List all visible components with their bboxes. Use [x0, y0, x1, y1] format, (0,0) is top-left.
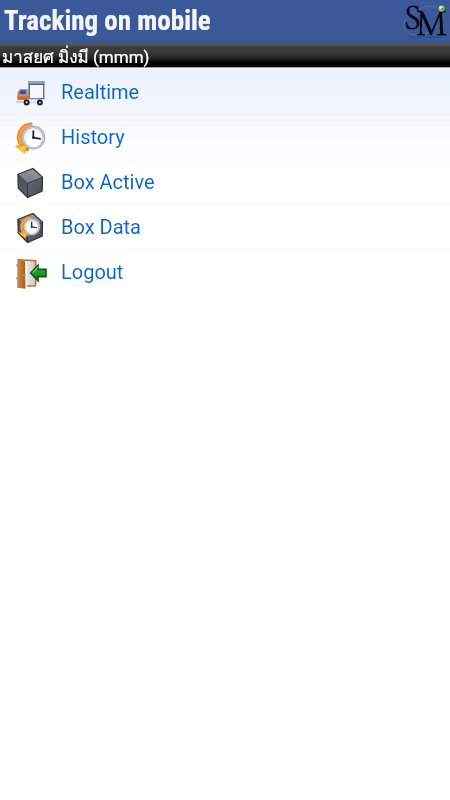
staticText: Realtime	[61, 80, 140, 103]
button[interactable]: Realtime	[0, 69, 450, 114]
staticText: Box Data	[61, 215, 141, 238]
button[interactable]: Box Active	[0, 159, 450, 204]
staticText: Logout	[61, 260, 124, 283]
button[interactable]: Logout	[0, 249, 450, 294]
staticText: M	[416, 1, 447, 43]
staticText: History	[61, 125, 125, 148]
staticText: Tracking on mobile	[4, 5, 211, 37]
button[interactable]: Box Data	[0, 204, 450, 249]
staticText: มาสยศ มิ่งมี (mmm)	[2, 43, 150, 68]
button[interactable]: History	[0, 114, 450, 159]
staticText: S	[404, 0, 421, 39]
other: SM logo	[393, 1, 447, 43]
staticText: Box Active	[61, 170, 155, 193]
